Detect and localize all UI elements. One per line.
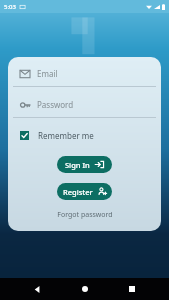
button[interactable]: Recents [121, 278, 143, 300]
staticText: Register [63, 187, 93, 197]
staticText: Email [37, 68, 58, 79]
button[interactable]: Forgot password [8, 210, 161, 220]
button[interactable]: Remember me [8, 128, 161, 143]
staticText: 5:03 [4, 3, 16, 11]
staticText: Password [37, 99, 74, 110]
button[interactable]: Sign In [57, 156, 112, 173]
button[interactable]: Back [26, 278, 48, 300]
button[interactable]: Home [74, 278, 96, 300]
button[interactable]: Register [57, 183, 112, 200]
staticText: Sign In [65, 160, 90, 170]
staticText: Forgot password [57, 210, 113, 220]
staticText: Remember me [38, 130, 94, 141]
button[interactable]: Email [8, 66, 161, 81]
button[interactable]: Password [8, 97, 161, 112]
